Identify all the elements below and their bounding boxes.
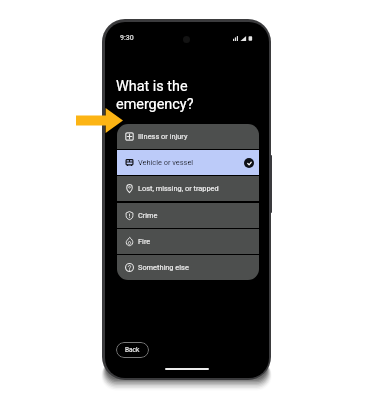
staticText: Crime xyxy=(138,211,158,220)
staticText: Something else xyxy=(138,263,189,272)
button[interactable]: Vehicle or vessel xyxy=(117,150,259,175)
staticText: 9:30 xyxy=(120,34,134,42)
staticText: Fire xyxy=(138,237,151,246)
button[interactable]: Back xyxy=(116,342,149,358)
staticText: Back xyxy=(125,346,140,354)
staticText: What is the emergency? xyxy=(116,78,194,113)
staticText: Vehicle or vessel xyxy=(138,158,194,167)
button[interactable]: Something else xyxy=(117,255,259,280)
staticText: Lost, missing, or trapped xyxy=(138,184,219,193)
other: Selected xyxy=(244,158,254,168)
staticText: Illness or injury xyxy=(138,132,188,141)
button[interactable]: Fire xyxy=(117,229,259,254)
button[interactable]: Illness or injury xyxy=(117,124,259,149)
button[interactable]: Crime xyxy=(117,203,259,228)
button[interactable]: Lost, missing, or trapped xyxy=(117,176,259,201)
